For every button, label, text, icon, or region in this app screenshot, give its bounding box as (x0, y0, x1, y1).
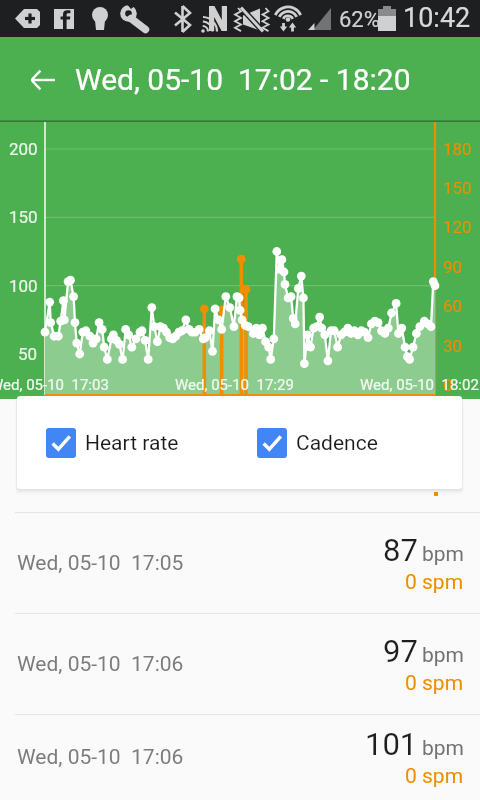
staticText: 97 (383, 633, 418, 669)
staticText: 180 (443, 139, 472, 159)
staticText: 60 (443, 296, 463, 316)
staticText: Wed, 05-10 17:06 (17, 745, 184, 770)
button[interactable]: Wed, 05-10 17:05 (0, 513, 480, 613)
staticText: 50 (18, 344, 38, 364)
staticText: bpm (422, 643, 464, 668)
staticText: Wed, 05-10 17:06 (17, 652, 184, 677)
staticText: Wed, 05-10 17:02 - 18:20 (75, 62, 411, 97)
staticText: 90 (443, 257, 463, 277)
staticText: 200 (9, 139, 38, 159)
staticText: 30 (443, 336, 463, 356)
button[interactable]: Back (19, 56, 67, 104)
staticText: Wed, 05-10 17:05 (17, 551, 184, 576)
staticText: bpm (422, 542, 464, 567)
button[interactable]: Heart rate (46, 428, 179, 458)
staticText: Cadence (296, 431, 378, 456)
staticText: 101 (365, 726, 418, 762)
button[interactable]: Wed, 05-10 17:06 (0, 614, 480, 714)
staticText: Heart rate (85, 431, 179, 456)
staticText: 0 spm (405, 570, 464, 595)
button[interactable]: Cadence (257, 428, 378, 458)
staticText: 87 (383, 532, 418, 568)
staticText: bpm (422, 736, 464, 761)
staticText: Wed, 05-10 17:29 (175, 376, 294, 394)
staticText: 120 (443, 217, 472, 237)
staticText: 150 (443, 178, 472, 198)
staticText: 62% (339, 7, 380, 33)
staticText: 100 (9, 276, 38, 296)
staticText: 0 (443, 375, 453, 395)
staticText: 0 spm (405, 764, 464, 789)
staticText: Wed, 05-10 18:02 (360, 376, 479, 394)
staticText: 10:42 (403, 2, 471, 34)
staticText: 150 (9, 207, 38, 227)
staticText: 0 spm (405, 671, 464, 696)
staticText: Wed, 05-10 17:03 (0, 376, 109, 394)
button[interactable]: Wed, 05-10 17:06 (0, 715, 480, 800)
